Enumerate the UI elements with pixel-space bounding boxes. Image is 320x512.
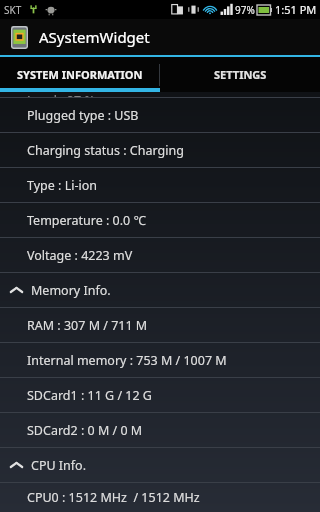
button[interactable]: SDCard2 : 0 M / 0 M <box>0 413 320 447</box>
button[interactable]: SDCard1 : 11 G / 12 G <box>0 378 320 412</box>
button[interactable]: Collapse CPU Info. <box>0 448 320 482</box>
button[interactable]: Voltage : 4223 mV <box>0 238 320 272</box>
staticText: SDCard1 : 11 G / 12 G <box>27 387 152 404</box>
staticText: CPU0 : 1512 MHz / 1512 MHz <box>27 489 200 506</box>
staticText: Plugged type : USB <box>27 107 139 124</box>
staticText: Memory Info. <box>31 282 111 299</box>
button[interactable]: CPU0 : 1512 MHz / 1512 MHz <box>0 483 320 512</box>
button[interactable]: Charging status : Charging <box>0 133 320 167</box>
button[interactable]: Temperature : 0.0 ℃ <box>0 203 320 237</box>
staticText: Type : Li-ion <box>27 177 97 194</box>
staticText: SETTINGS <box>214 67 267 82</box>
staticText: CPU Info. <box>31 457 87 474</box>
staticText: 1:51 PM <box>275 2 317 17</box>
staticText: Voltage : 4223 mV <box>27 247 133 264</box>
button[interactable]: Plugged type : USB <box>0 98 320 132</box>
staticText: SDCard2 : 0 M / 0 M <box>27 422 143 439</box>
staticText: SYSTEM INFORMATION <box>17 67 143 82</box>
staticText: 97% <box>235 3 255 17</box>
staticText: Temperature : 0.0 ℃ <box>27 212 146 229</box>
staticText: Level : 97 % <box>27 92 95 97</box>
button[interactable]: SYSTEM INFORMATION <box>0 57 159 92</box>
staticText: Charging status : Charging <box>27 142 184 159</box>
staticText: RAM : 307 M / 711 M <box>27 317 148 334</box>
button[interactable]: Type : Li-ion <box>0 168 320 202</box>
staticText: ASystemWidget <box>39 27 150 47</box>
staticText: Internal memory : 753 M / 1007 M <box>27 352 227 369</box>
button[interactable]: Collapse Memory Info. <box>0 273 320 307</box>
staticText: SKT <box>4 3 22 17</box>
button[interactable]: SETTINGS <box>160 57 320 92</box>
button[interactable]: Internal memory : 753 M / 1007 M <box>0 343 320 377</box>
button[interactable]: RAM : 307 M / 711 M <box>0 308 320 342</box>
